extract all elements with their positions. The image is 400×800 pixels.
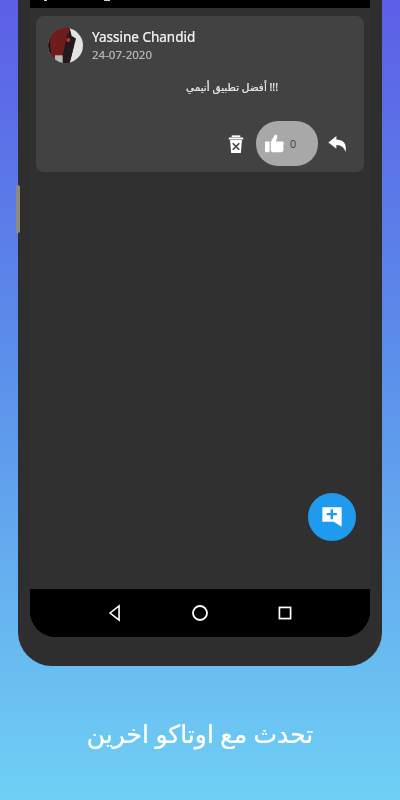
button[interactable]: 0	[256, 121, 318, 166]
button[interactable]: Yassine Chandid	[36, 16, 364, 172]
button[interactable]: New comment	[308, 493, 356, 541]
staticText: 0	[290, 136, 297, 151]
button[interactable]: Delete	[216, 124, 256, 164]
staticText: 24-07-2020	[92, 47, 153, 63]
staticText: ‫!!! أفضل تطبيق أنيمي‬	[36, 80, 278, 94]
staticText: تحدث مع اوتاكو اخرين	[0, 716, 400, 750]
staticText: Yassine Chandid	[92, 28, 196, 46]
button[interactable]: Reply	[318, 124, 358, 164]
